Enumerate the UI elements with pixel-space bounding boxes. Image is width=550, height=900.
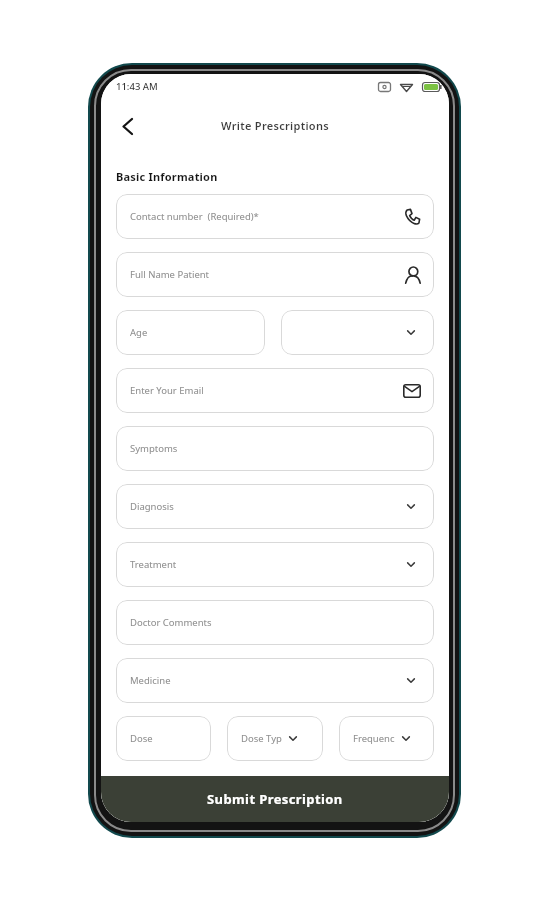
staticText: Dose [130,732,153,745]
button[interactable]: Full Name Patient [116,252,434,297]
staticText: Diagnosis [130,500,174,513]
staticText: Dose Typ [241,732,282,745]
button[interactable]: Symptoms [116,426,434,471]
button[interactable]: Treatment [116,542,434,587]
staticText: Submit Prescription [207,790,343,808]
staticText: Write Prescriptions [221,118,329,133]
button[interactable]: Medicine [116,658,434,703]
button[interactable]: Age [116,310,265,355]
button[interactable] [115,114,139,138]
staticText: Frequenc [353,732,395,745]
button[interactable]: Contact number (Required)* [116,194,434,239]
staticText: Doctor Comments [130,616,212,629]
staticText: Enter Your Email [130,384,204,397]
staticText: 11:43 AM [116,80,158,93]
button[interactable]: Doctor Comments [116,600,434,645]
button[interactable]: Enter Your Email [116,368,434,413]
staticText: Treatment [130,558,177,571]
button[interactable]: Diagnosis [116,484,434,529]
staticText: Full Name Patient [130,268,210,281]
button[interactable]: Frequenc [339,716,434,761]
staticText: Symptoms [130,442,178,455]
button[interactable]: Dose [116,716,211,761]
staticText: Basic Information [116,169,218,184]
staticText: Age [130,326,148,339]
button[interactable]: Dose Typ [227,716,323,761]
button[interactable] [281,310,434,355]
staticText: Medicine [130,674,171,687]
button[interactable]: Submit Prescription [101,776,449,822]
staticText: Contact number (Required)* [130,210,259,223]
